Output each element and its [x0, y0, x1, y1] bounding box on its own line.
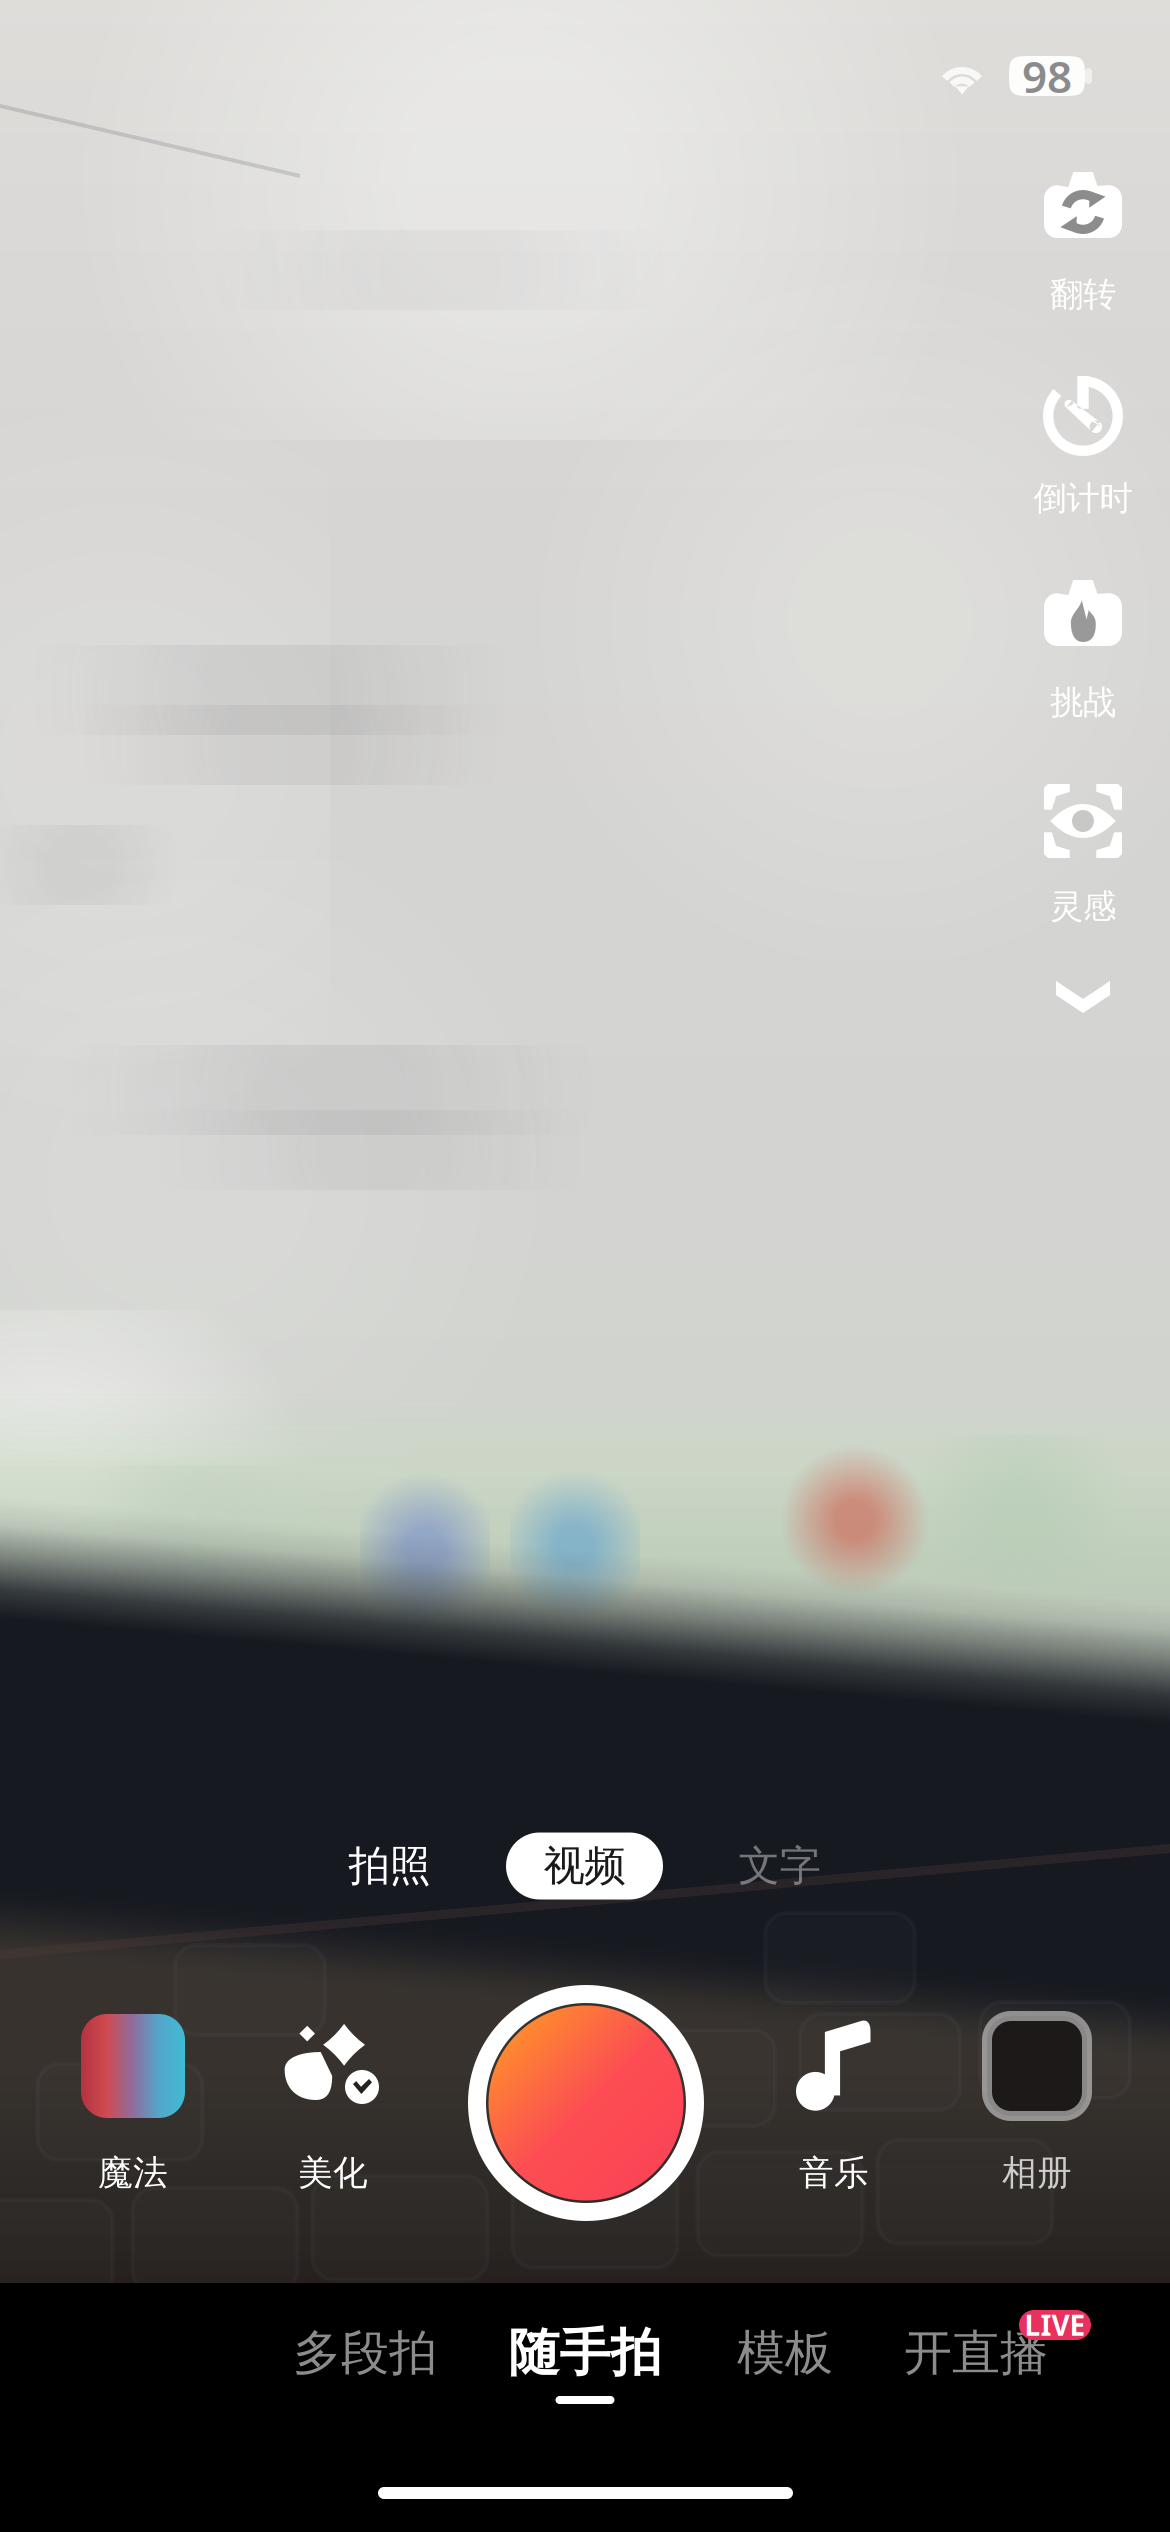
staticText: 多段拍 — [293, 2323, 437, 2382]
button[interactable]: 音乐 — [749, 1982, 919, 2196]
button[interactable]: 倒计时 — [1008, 376, 1158, 520]
button[interactable]: 视频 — [506, 1829, 663, 1903]
staticText: 视频 — [543, 1841, 625, 1891]
staticText: 音乐 — [799, 2152, 869, 2194]
button[interactable]: 随手拍 — [500, 2311, 670, 2415]
staticText: 随手拍 — [508, 2322, 661, 2384]
staticText: 拍照 — [348, 1841, 430, 1891]
staticText: 翻转 — [1050, 274, 1116, 315]
staticText: 模板 — [737, 2323, 833, 2382]
button[interactable]: 魔法 — [48, 1982, 218, 2196]
staticText: 魔法 — [98, 2152, 168, 2194]
staticText: LIVE — [1024, 2306, 1085, 2344]
staticText: 倒计时 — [1033, 478, 1132, 519]
button[interactable]: 相册 — [952, 1982, 1122, 2196]
button[interactable]: 翻转 — [1008, 172, 1158, 316]
button[interactable]: 文字 — [663, 1829, 896, 1903]
button[interactable]: 挑战 — [1008, 580, 1158, 724]
button[interactable]: 多段拍 — [280, 2311, 450, 2415]
button[interactable]: Collapse tools — [1008, 928, 1158, 1066]
staticText: 相册 — [1002, 2152, 1072, 2194]
button[interactable]: 拍照 — [273, 1829, 506, 1903]
staticText: 美化 — [298, 2152, 368, 2194]
staticText: 开直播 — [904, 2323, 1048, 2382]
button[interactable]: 模板 — [725, 2311, 845, 2415]
button[interactable]: 开直播 — [891, 2311, 1061, 2415]
button[interactable]: Record — [466, 1983, 706, 2223]
staticText: 挑战 — [1050, 682, 1116, 723]
button[interactable]: 灵感 — [1008, 784, 1158, 928]
button[interactable]: 美化 — [248, 1982, 418, 2196]
staticText: 文字 — [738, 1841, 820, 1891]
staticText: 灵感 — [1050, 886, 1116, 927]
staticText: 98 — [1022, 47, 1072, 105]
